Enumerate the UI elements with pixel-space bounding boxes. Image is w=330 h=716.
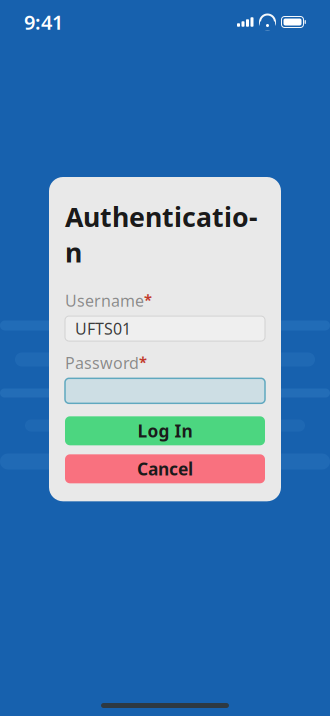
button[interactable]: Cancel: [65, 454, 265, 483]
staticText: 9:41: [24, 9, 63, 35]
button[interactable]: Log In: [65, 416, 265, 445]
staticText: Password: [65, 352, 139, 373]
staticText: Log In: [137, 419, 192, 442]
staticText: *: [139, 352, 147, 372]
staticText: Username: [65, 290, 144, 311]
staticText: *: [144, 290, 152, 309]
staticText: Authentication: [65, 199, 258, 270]
staticText: Cancel: [137, 457, 193, 480]
staticText: UFTS01: [75, 318, 131, 339]
